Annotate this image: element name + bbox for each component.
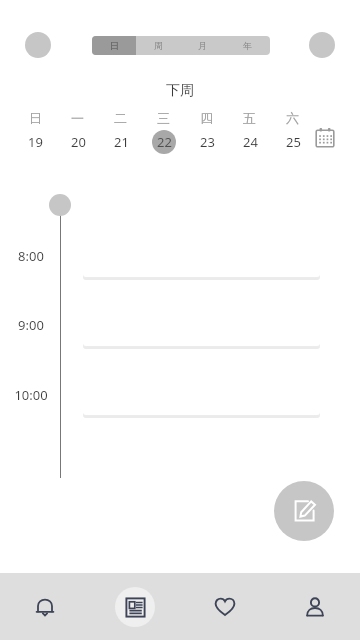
button[interactable]: Menu: [309, 32, 335, 58]
staticText: 六: [286, 110, 299, 126]
staticText: 一: [71, 110, 84, 126]
button[interactable]: 周: [136, 36, 180, 55]
staticText: 21: [114, 133, 129, 151]
button[interactable]: 二: [99, 110, 142, 154]
staticText: 下周: [166, 82, 194, 100]
button[interactable]: 五: [228, 110, 271, 154]
staticText: 日: [29, 110, 42, 126]
staticText: 25: [286, 133, 301, 151]
button[interactable]: News: [90, 573, 180, 640]
staticText: 四: [200, 110, 213, 126]
staticText: 二: [114, 110, 127, 126]
button[interactable]: 三: [142, 110, 185, 154]
button[interactable]: 一: [56, 110, 99, 154]
staticText: 23: [200, 133, 215, 151]
button[interactable]: 日: [14, 110, 56, 154]
staticText: 10:00: [14, 386, 48, 404]
staticText: 月: [198, 40, 207, 51]
button[interactable]: Notifications: [0, 573, 90, 640]
button[interactable]: 月: [180, 36, 225, 55]
button[interactable]: Create event: [274, 481, 334, 541]
staticText: 日: [110, 40, 119, 51]
button[interactable]: 日: [92, 36, 136, 55]
staticText: 五: [243, 110, 256, 126]
button[interactable]: Profile: [270, 573, 360, 640]
staticText: 9:00: [18, 316, 44, 334]
staticText: 8:00: [18, 247, 44, 265]
staticText: 年: [243, 40, 252, 51]
button[interactable]: Favorites: [180, 573, 270, 640]
staticText: 19: [28, 133, 43, 151]
button[interactable]: 四: [185, 110, 228, 154]
staticText: 三: [157, 110, 170, 126]
staticText: 周: [154, 40, 163, 51]
button[interactable]: 六: [271, 110, 314, 154]
staticText: 20: [71, 133, 86, 151]
staticText: 22: [157, 133, 172, 151]
staticText: 24: [243, 133, 258, 151]
button[interactable]: 年: [225, 36, 270, 55]
button[interactable]: Profile: [25, 32, 51, 58]
button[interactable]: Open calendar: [313, 126, 337, 150]
